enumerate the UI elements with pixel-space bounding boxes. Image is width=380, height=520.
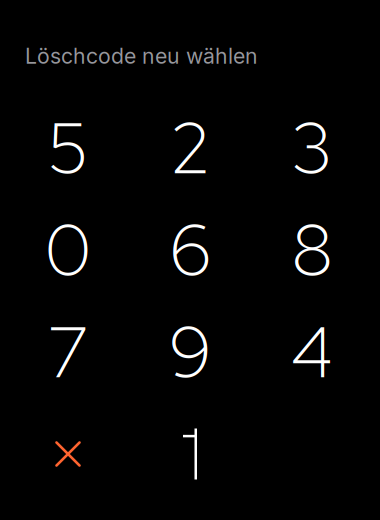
staticText: 8 <box>291 203 333 297</box>
staticText: 2 <box>169 101 211 195</box>
button[interactable]: 4 <box>251 301 373 403</box>
staticText: Löschcode neu wählen <box>25 43 258 69</box>
button[interactable]: 7 <box>7 301 129 403</box>
staticText: 5 <box>47 101 89 195</box>
staticText: 6 <box>169 203 211 297</box>
staticText: 3 <box>291 101 333 195</box>
staticText: 7 <box>47 305 89 399</box>
button[interactable]: 9 <box>129 301 251 403</box>
button[interactable]: 0 <box>7 199 129 301</box>
button[interactable]: 6 <box>129 199 251 301</box>
button[interactable]: 2 <box>129 97 251 199</box>
staticText: 0 <box>45 203 91 297</box>
button[interactable]: 5 <box>7 97 129 199</box>
button[interactable]: Delete <box>7 403 129 505</box>
button[interactable]: 1 <box>129 403 251 505</box>
staticText: 9 <box>168 305 211 399</box>
button[interactable]: 3 <box>251 97 373 199</box>
button[interactable]: 8 <box>251 199 373 301</box>
staticText: 4 <box>291 305 333 399</box>
